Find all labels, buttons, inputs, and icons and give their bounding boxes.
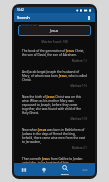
button[interactable]: Then cometh Jesus from Galilee to Jordan… (18, 155, 91, 163)
button[interactable]: Options (86, 15, 92, 21)
staticText: Matthew 1:1 (22, 59, 87, 63)
staticText: Now the birth of Jesus Christ was on thi… (22, 95, 87, 115)
button[interactable]: Now the birth of Jesus Christ was on thi… (18, 93, 91, 123)
button[interactable]: Now when Jesus was born in Bethlehem of … (18, 126, 91, 152)
staticText: Matthew 1:16 (22, 84, 87, 88)
button[interactable]: The book of the generation of Jesus Chri… (18, 47, 91, 65)
button[interactable]: Bookmarks (34, 163, 54, 176)
staticText: The book of the generation of Jesus Chri… (22, 49, 87, 57)
button[interactable]: Search (55, 163, 75, 176)
staticText: Then cometh Jesus from Galilee to Jordan… (22, 157, 87, 163)
staticText: Now when Jesus was born in Bethlehem of … (22, 128, 87, 144)
staticText: Matthew 1:18 (22, 117, 87, 121)
button[interactable]: More (75, 163, 95, 176)
staticText: Matthew 2:1 (22, 146, 87, 150)
staticText: And Jacob begat Joseph the husband of Ma… (22, 70, 87, 82)
staticText: Matches Found : 108 (18, 40, 91, 44)
button[interactable]: Jesus (18, 25, 91, 36)
staticText: 10:52 (17, 8, 24, 12)
staticText: Search for Text (22, 24, 38, 27)
staticText: Jesus (50, 28, 59, 33)
button[interactable]: Read (14, 163, 34, 176)
staticText: Search (17, 15, 30, 20)
staticText: Search (61, 172, 69, 175)
button[interactable]: And Jacob begat Joseph the husband of Ma… (18, 68, 91, 90)
